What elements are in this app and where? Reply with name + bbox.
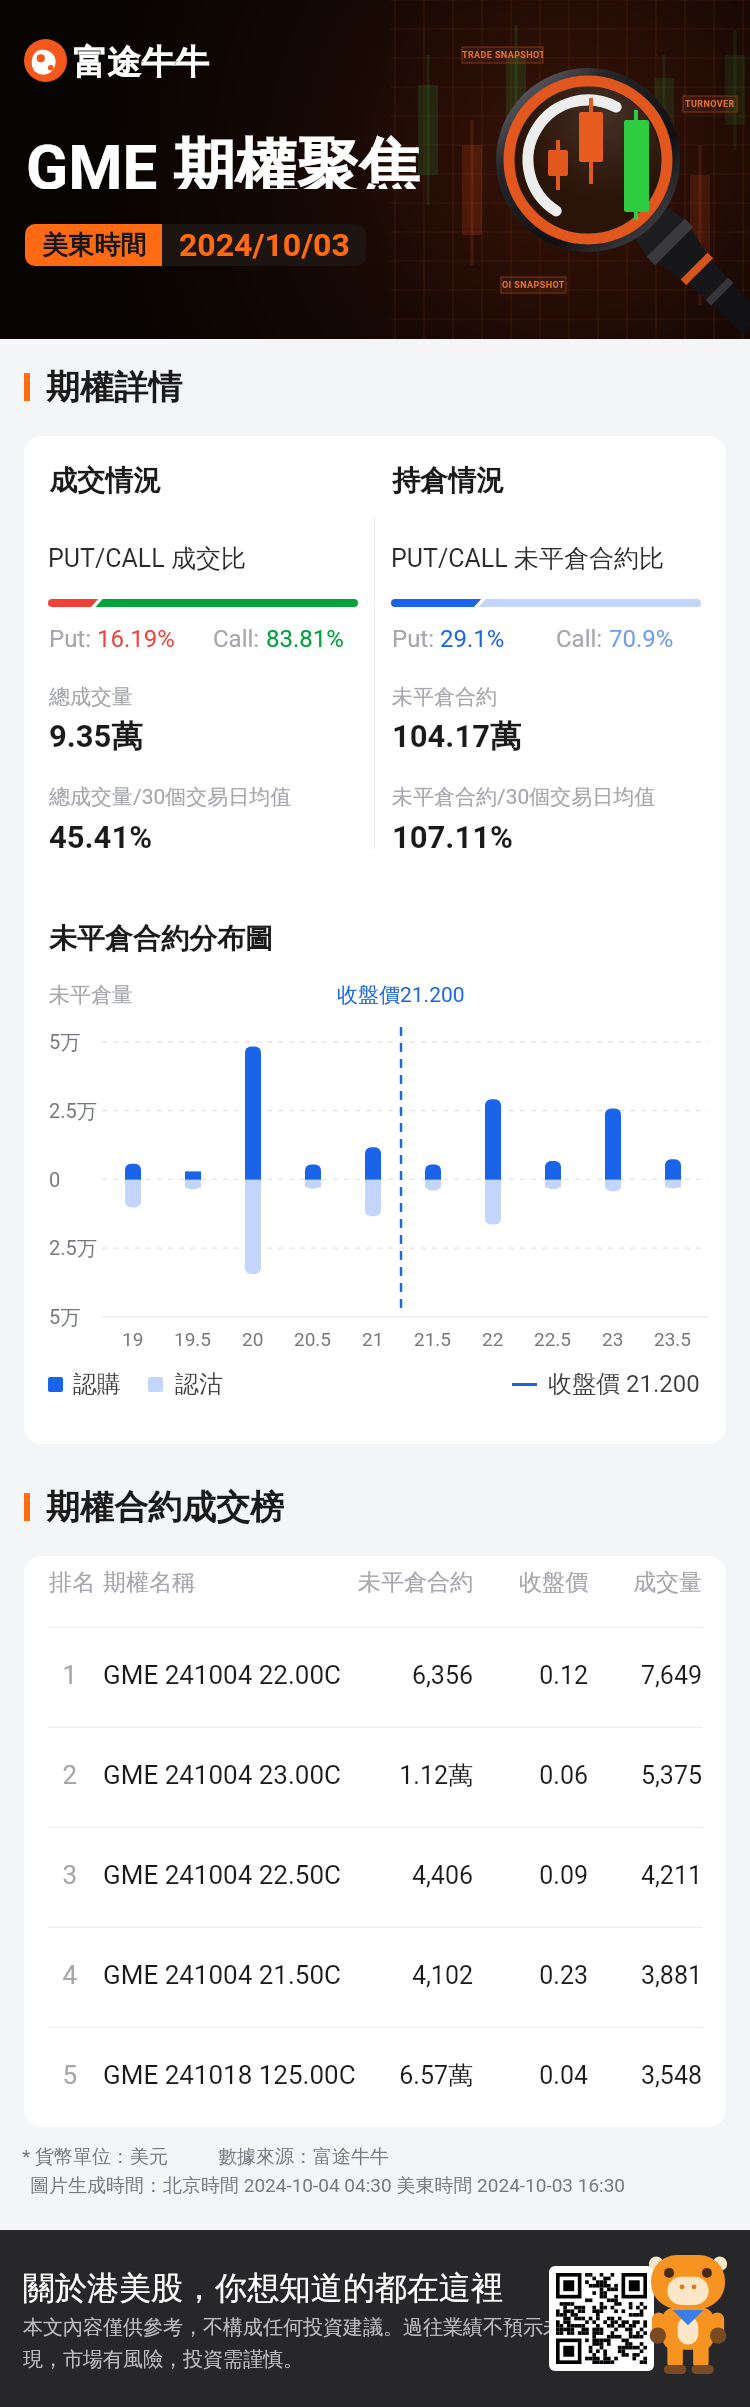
staticText: 0 <box>49 1168 61 1191</box>
staticText: OI SNAPSHOT <box>502 280 565 291</box>
staticText: 1 <box>62 1660 77 1690</box>
staticText: 4,102 <box>411 1961 473 1990</box>
staticText: 圖片生成時間：北京時間 2024-10-04 04:30 美東時間 2024-1… <box>30 2174 626 2198</box>
staticText: Call: <box>213 625 266 653</box>
staticText: 2 <box>62 1760 77 1790</box>
staticText: 83.81% <box>266 625 344 653</box>
staticText: 0.06 <box>539 1761 588 1790</box>
staticText: 29.1% <box>440 625 505 653</box>
staticText: 數據來源：富途牛牛 <box>218 2145 389 2169</box>
staticText: TURNOVER <box>685 99 735 110</box>
staticText: 認購 <box>73 1369 121 1399</box>
staticText: 3,881 <box>640 1961 702 1990</box>
staticText: 104.17萬 <box>392 717 521 756</box>
staticText: 未平倉合約 <box>392 684 497 710</box>
staticText: * 貨幣單位：美元 <box>22 2145 168 2169</box>
staticText: 期權合約成交榜 <box>46 1486 284 1529</box>
staticText: 未平倉量 <box>49 982 133 1008</box>
staticText: 16.19% <box>97 625 175 653</box>
staticText: PUT/CALL 成交比 <box>48 543 246 574</box>
staticText: 5 <box>62 2060 77 2090</box>
staticText: 排名 <box>49 1568 95 1597</box>
button[interactable] <box>24 2028 726 2127</box>
staticText: 收盤價 21.200 <box>548 1369 700 1399</box>
staticText: 0.04 <box>539 2061 588 2090</box>
staticText: 未平倉合約 <box>358 1568 473 1597</box>
staticText: 總成交量 <box>49 684 133 710</box>
staticText: TRADE SNAPSHOT <box>462 50 543 61</box>
staticText: 21 <box>362 1328 384 1350</box>
staticText: 23 <box>602 1328 624 1350</box>
staticText: GME 241004 22.50C <box>103 1860 341 1890</box>
button[interactable] <box>24 1828 726 1927</box>
staticText: 成交量 <box>633 1568 702 1597</box>
staticText: 22.5 <box>534 1328 572 1350</box>
staticText: 107.11% <box>392 819 513 855</box>
staticText: 6.57萬 <box>399 2060 473 2091</box>
staticText: 0.23 <box>539 1961 588 1990</box>
staticText: Put: <box>392 625 440 653</box>
staticText: 1.12萬 <box>399 1760 473 1791</box>
staticText: 3,548 <box>640 2061 702 2090</box>
staticText: 23.5 <box>654 1328 692 1350</box>
staticText: 0.09 <box>539 1861 588 1890</box>
staticText: GME 241004 22.00C <box>103 1660 341 1690</box>
staticText: 0.12 <box>539 1661 588 1690</box>
staticText: 22 <box>482 1328 504 1350</box>
staticText: 成交情況 <box>49 463 161 498</box>
staticText: 總成交量/30個交易日均值 <box>49 784 292 810</box>
staticText: 收盤價 <box>519 1568 588 1597</box>
staticText: 9.35萬 <box>49 717 143 756</box>
staticText: GME 期權聚焦 <box>26 129 421 189</box>
staticText: 21.5 <box>414 1328 452 1350</box>
staticText: 2.5万 <box>49 1099 97 1124</box>
staticText: 關於港美股，你想知道的都在這裡 <box>23 2268 503 2308</box>
staticText: 20.5 <box>294 1328 332 1350</box>
staticText: 3 <box>62 1860 77 1890</box>
staticText: 期權名稱 <box>103 1568 195 1597</box>
staticText: 5万 <box>49 1305 81 1330</box>
button[interactable] <box>24 1928 726 2027</box>
button[interactable]: 美東時間 <box>25 224 366 266</box>
staticText: 7,649 <box>640 1661 702 1690</box>
staticText: PUT/CALL 未平倉合約比 <box>391 543 664 574</box>
staticText: 5万 <box>49 1030 81 1055</box>
other: QR code <box>556 2273 647 2364</box>
staticText: 19 <box>122 1328 144 1350</box>
button[interactable] <box>24 1628 726 1727</box>
staticText: GME 241004 23.00C <box>103 1760 341 1790</box>
staticText: GME 241018 125.00C <box>103 2060 356 2090</box>
staticText: 4,406 <box>411 1861 473 1890</box>
staticText: 未平倉合約分布圖 <box>49 921 273 956</box>
button[interactable] <box>24 1728 726 1827</box>
staticText: 未平倉合約/30個交易日均值 <box>392 784 656 810</box>
staticText: 70.9% <box>609 625 674 653</box>
staticText: 2.5万 <box>49 1236 97 1261</box>
staticText: 5,375 <box>640 1761 702 1790</box>
staticText: 19.5 <box>174 1328 212 1350</box>
staticText: 45.41% <box>49 819 153 855</box>
staticText: 收盤價21.200 <box>337 982 465 1008</box>
staticText: Put: <box>49 625 97 653</box>
staticText: 認沽 <box>175 1369 223 1399</box>
staticText: 富途牛牛 <box>73 41 209 84</box>
staticText: Call: <box>556 625 609 653</box>
staticText: 4,211 <box>640 1861 702 1890</box>
staticText: 6,356 <box>411 1661 473 1690</box>
staticText: 持倉情況 <box>392 463 504 498</box>
staticText: 期權詳情 <box>46 366 182 409</box>
staticText: 2024/10/03 <box>179 226 350 264</box>
staticText: 本文內容僅供參考，不構成任何投資建議。過往業績不預示未來表 現，市場有風險，投資… <box>23 2315 603 2372</box>
staticText: 4 <box>62 1960 77 1990</box>
staticText: 美東時間 <box>42 229 146 262</box>
staticText: GME 241004 21.50C <box>103 1960 341 1990</box>
staticText: 20 <box>242 1328 264 1350</box>
